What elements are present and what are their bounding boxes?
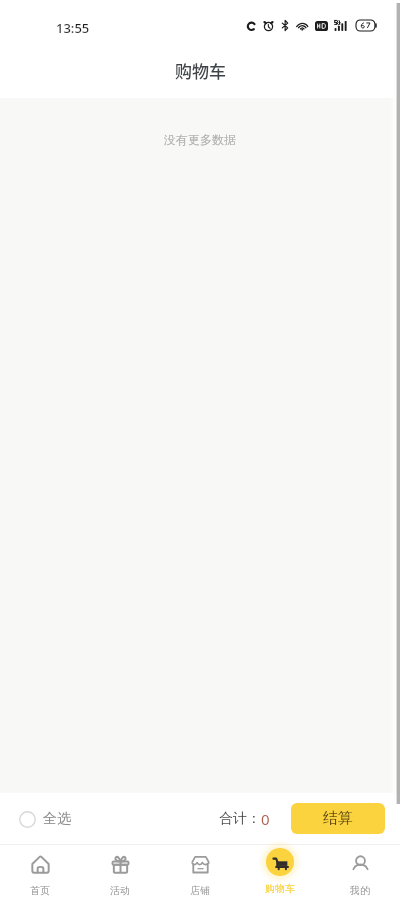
staticText: 13:55: [56, 19, 90, 37]
button[interactable]: 购物车: [240, 844, 320, 900]
staticText: 购物车: [175, 58, 226, 83]
staticText: 结算: [323, 809, 353, 828]
staticText: 活动: [110, 884, 130, 897]
staticText: 购物车: [265, 882, 295, 895]
button[interactable]: 全选: [12, 802, 78, 836]
staticText: 没有更多数据: [164, 132, 236, 147]
staticText: 0: [261, 809, 270, 829]
staticText: 全选: [43, 810, 71, 828]
staticText: 我的: [350, 884, 370, 897]
button[interactable]: 活动: [80, 844, 160, 900]
staticText: 合计：: [219, 810, 261, 828]
staticText: 店铺: [190, 884, 210, 897]
button[interactable]: 店铺: [160, 844, 240, 900]
button[interactable]: 首页: [0, 844, 80, 900]
staticText: 首页: [30, 884, 50, 897]
button[interactable]: 我的: [320, 844, 400, 900]
other: 购物车: [266, 848, 294, 876]
button[interactable]: 结算: [291, 803, 385, 834]
